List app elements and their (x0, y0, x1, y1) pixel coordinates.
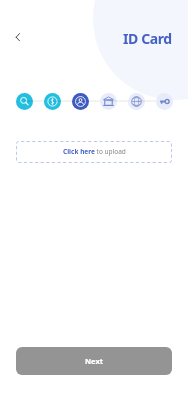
button[interactable]: Payment (38, 92, 66, 110)
button[interactable]: Back (8, 27, 28, 47)
button[interactable]: Next (16, 347, 172, 375)
button[interactable]: Region (122, 92, 150, 110)
button[interactable]: Bank (94, 92, 122, 110)
staticText: Next (85, 356, 104, 366)
button[interactable]: Search (10, 92, 38, 110)
button[interactable]: Click here to upload (16, 141, 172, 163)
staticText: ID Card (123, 29, 172, 48)
button[interactable]: Security (150, 92, 178, 110)
button[interactable]: Profile (66, 92, 94, 110)
staticText: Click here to upload (63, 147, 126, 156)
